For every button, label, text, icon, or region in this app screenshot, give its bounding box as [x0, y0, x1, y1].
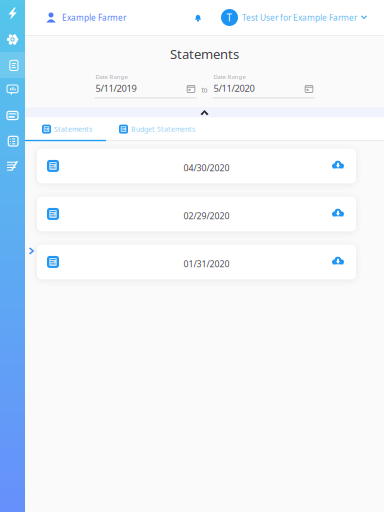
button[interactable]: Pick a date — [303, 83, 314, 93]
button[interactable]: Pick a date — [185, 83, 196, 93]
button[interactable]: Statements — [0, 52, 25, 78]
button[interactable]: Example Farmer — [25, 3, 136, 32]
button[interactable]: Collapse filters — [25, 107, 384, 117]
button[interactable]: Dashboard — [0, 0, 25, 27]
staticText: to — [201, 85, 207, 94]
button[interactable]: Budget Statements — [107, 117, 205, 140]
staticText: Statements — [170, 45, 239, 63]
button[interactable]: 01/31/2020 — [37, 244, 356, 279]
button[interactable]: 02/29/2020 — [37, 196, 356, 231]
button[interactable]: T — [215, 2, 384, 33]
staticText: 01/31/2020 — [183, 258, 229, 270]
staticText: Test User for Example Farmer — [242, 12, 357, 23]
staticText: Date Range — [213, 73, 245, 81]
button[interactable]: Settings — [0, 27, 25, 52]
staticText: T — [226, 11, 232, 24]
button[interactable]: Payments — [0, 103, 25, 128]
button[interactable]: 04/30/2020 — [37, 148, 356, 183]
button[interactable]: Notifications — [193, 4, 215, 30]
staticText: 02/29/2020 — [183, 210, 229, 222]
button[interactable]: Reports — [0, 153, 25, 178]
staticText: Date Range — [95, 73, 127, 81]
staticText: 04/30/2020 — [183, 162, 229, 174]
button[interactable]: Messages — [0, 78, 25, 103]
button[interactable]: Statements — [25, 117, 107, 140]
staticText: 5/11/2020 — [213, 82, 254, 94]
button[interactable]: Expand sidebar — [25, 243, 38, 258]
button[interactable]: Records — [0, 128, 25, 153]
staticText: Budget Statements — [131, 124, 195, 134]
staticText: Statements — [54, 124, 92, 134]
staticText: 5/11/2019 — [95, 82, 136, 94]
staticText: Example Farmer — [62, 12, 126, 23]
